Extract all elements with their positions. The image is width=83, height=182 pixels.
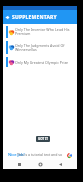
staticText: Only The Inventor Who Lead His Premium xyxy=(15,27,73,37)
staticText: GOT IT xyxy=(38,137,48,141)
button[interactable]: Google xyxy=(65,151,73,159)
staticText: SUPPLEMENTARY RELEASE xyxy=(12,14,77,21)
button[interactable]: Back xyxy=(56,160,65,169)
button[interactable]: Nice job! xyxy=(8,152,25,157)
button[interactable]: Recent apps xyxy=(15,160,24,169)
staticText: Only My Greatest Olympic Prize xyxy=(15,60,69,65)
button[interactable]: Only My Greatest Olympic Prize xyxy=(6,57,73,67)
staticText: This is a tutorial text and so xyxy=(17,152,63,157)
staticText: Only The Judgments Avoid Of Winnersellus xyxy=(15,43,73,53)
button[interactable]: Only The Inventor Who Lead His Premium xyxy=(6,26,73,38)
button[interactable]: Only The Judgments Avoid Of Winnersellus xyxy=(6,41,73,54)
button[interactable]: Back xyxy=(3,10,12,24)
button[interactable]: Home xyxy=(36,160,45,169)
